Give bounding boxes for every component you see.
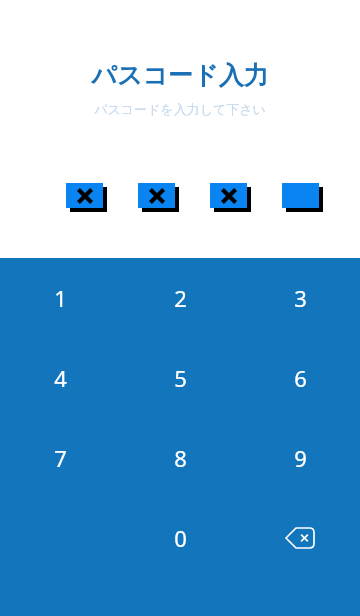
staticText: パスコード入力 [0, 60, 360, 91]
staticText: 1 [54, 283, 67, 313]
staticText: 0 [174, 523, 187, 553]
staticText: 9 [294, 443, 307, 473]
staticText: 4 [54, 363, 67, 393]
staticText: 5 [174, 363, 187, 393]
button[interactable]: 2 [120, 258, 240, 338]
button[interactable]: 6 [240, 338, 360, 418]
button[interactable]: 9 [240, 418, 360, 498]
staticText: 7 [54, 443, 67, 473]
button[interactable]: 8 [120, 418, 240, 498]
button[interactable]: 7 [0, 418, 120, 498]
button[interactable]: 4 [0, 338, 120, 418]
button[interactable]: Backspace [240, 498, 360, 578]
staticText: 2 [174, 283, 187, 313]
staticText: パスコードを入力して下さい [0, 101, 360, 117]
button[interactable]: 1 [0, 258, 120, 338]
staticText: 6 [294, 363, 307, 393]
button[interactable]: 0 [120, 498, 240, 578]
button[interactable]: 5 [120, 338, 240, 418]
staticText: 3 [294, 283, 307, 313]
button[interactable]: 3 [240, 258, 360, 338]
staticText: 8 [174, 443, 187, 473]
